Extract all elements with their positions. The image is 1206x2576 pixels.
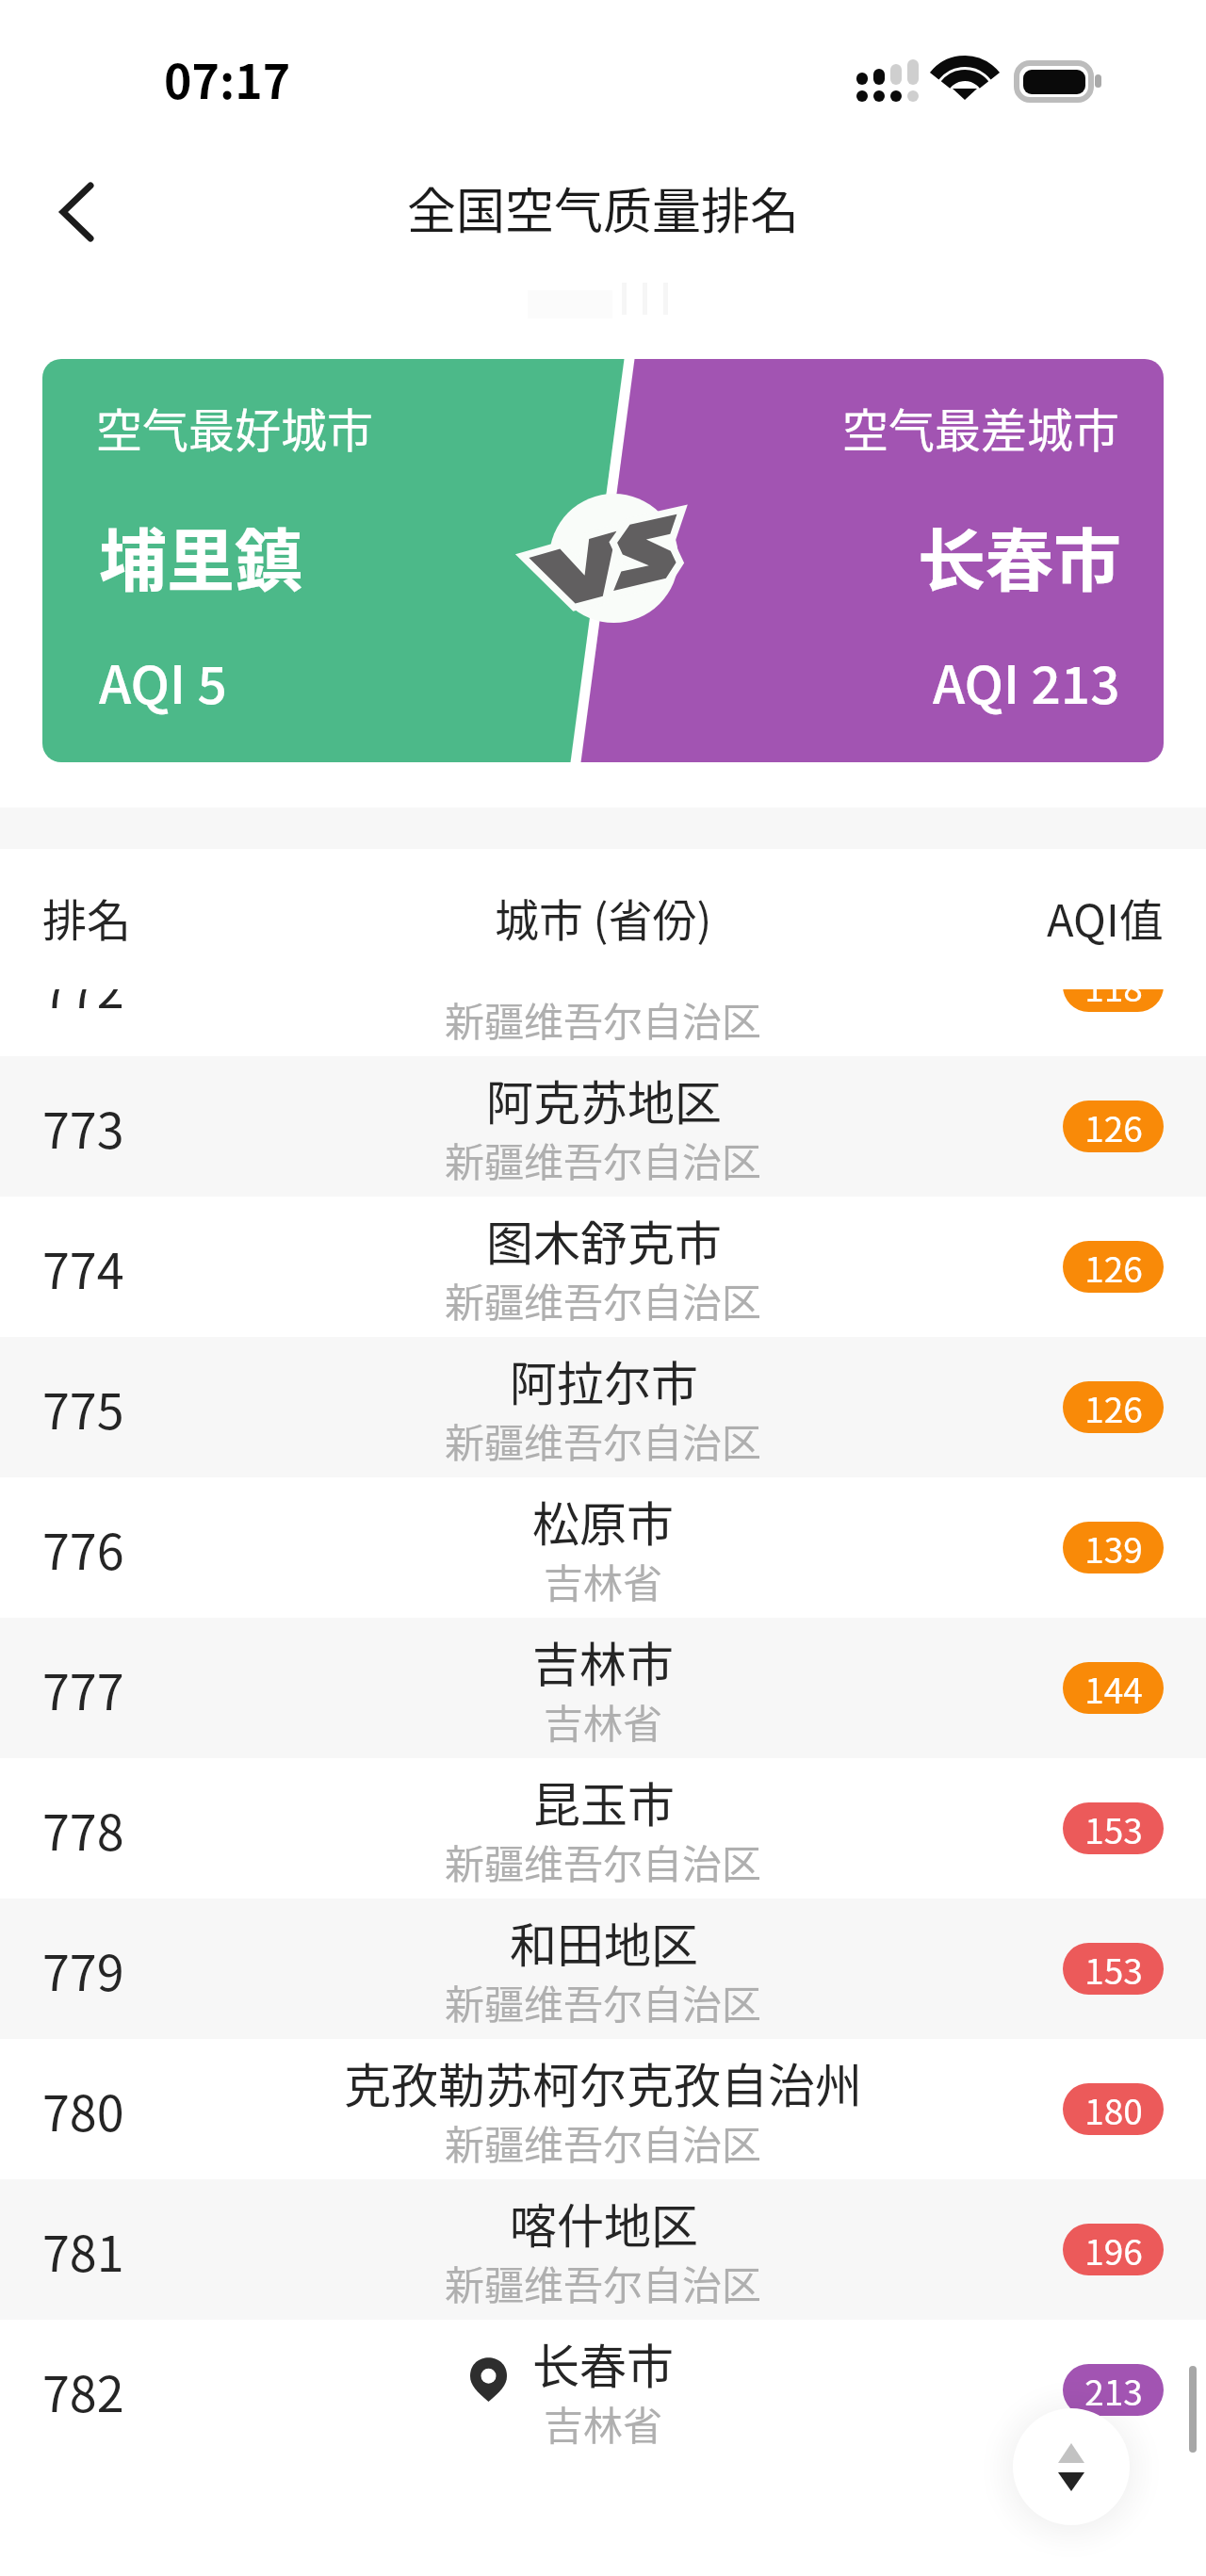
staticText: 长春市 xyxy=(532,2329,674,2397)
button[interactable]: Back xyxy=(25,174,101,250)
staticText: 126 xyxy=(1084,1101,1143,1152)
button[interactable]: 774 xyxy=(0,1197,1206,1337)
staticText: AQI值 xyxy=(1047,885,1164,949)
staticText: 126 xyxy=(1084,1382,1143,1433)
staticText: 长春市 xyxy=(918,506,1122,604)
button[interactable]: 776 xyxy=(0,1477,1206,1618)
staticText: 774 xyxy=(42,1232,124,1303)
staticText: 153 xyxy=(1084,1944,1143,1995)
staticText: 新疆维吾尔自治区 xyxy=(445,1973,762,2030)
staticText: 昆玉市 xyxy=(533,1768,675,1835)
staticText: 新疆维吾尔自治区 xyxy=(445,1833,762,1890)
staticText: 吉林省 xyxy=(544,2394,663,2452)
staticText: 空气最好城市 xyxy=(96,394,374,461)
button[interactable]: 773 xyxy=(0,1056,1206,1197)
staticText: 126 xyxy=(1084,1242,1143,1293)
button[interactable]: 777 xyxy=(0,1618,1206,1758)
staticText: 新疆维吾尔自治区 xyxy=(445,1131,762,1188)
staticText: 775 xyxy=(42,1373,124,1443)
button[interactable]: 781 xyxy=(0,2179,1206,2320)
button[interactable]: 775 xyxy=(0,1337,1206,1477)
staticText: 排名 xyxy=(42,885,131,949)
button[interactable]: Scroll to top or bottom xyxy=(1013,2408,1130,2525)
staticText: 139 xyxy=(1084,1523,1143,1573)
staticText: 新疆维吾尔自治区 xyxy=(445,1271,762,1329)
staticText: 新疆维吾尔自治区 xyxy=(445,1411,762,1469)
staticText: 772 xyxy=(42,952,124,1022)
staticText: 博尔塔拉蒙古自治州 xyxy=(391,925,815,993)
staticText: 780 xyxy=(42,2075,124,2145)
staticText: 778 xyxy=(42,1794,124,1865)
button[interactable]: 782 xyxy=(0,2320,1206,2460)
staticText: 新疆维吾尔自治区 xyxy=(445,2113,762,2171)
staticText: 782 xyxy=(42,2356,124,2426)
staticText: 阿拉尔市 xyxy=(510,1346,698,1414)
button[interactable]: 780 xyxy=(0,2039,1206,2179)
staticText: 07:17 xyxy=(164,44,291,112)
button[interactable]: 779 xyxy=(0,1899,1206,2039)
staticText: 城市 (省份) xyxy=(495,885,712,949)
staticText: 776 xyxy=(42,1513,124,1584)
staticText: 180 xyxy=(1084,2084,1143,2135)
staticText: 153 xyxy=(1084,1803,1143,1854)
staticText: 喀什地区 xyxy=(510,2189,698,2257)
staticText: 144 xyxy=(1084,1663,1143,1714)
staticText: 新疆维吾尔自治区 xyxy=(445,2254,762,2311)
staticText: AQI 5 xyxy=(99,644,227,719)
staticText: 图木舒克市 xyxy=(486,1206,722,1274)
staticText: 和田地区 xyxy=(510,1908,698,1976)
staticText: 新疆维吾尔自治区 xyxy=(445,990,762,1048)
button[interactable]: 空气最好城市 xyxy=(42,359,1164,762)
staticText: 全国空气质量排名 xyxy=(407,172,800,243)
staticText: 773 xyxy=(42,1092,124,1163)
staticText: AQI 213 xyxy=(933,644,1120,719)
staticText: 779 xyxy=(42,1934,124,2005)
staticText: 777 xyxy=(42,1654,124,1724)
button[interactable]: 778 xyxy=(0,1758,1206,1899)
staticText: 213 xyxy=(1084,2365,1143,2416)
staticText: 781 xyxy=(42,2215,124,2286)
staticText: 埔里鎮 xyxy=(99,506,303,604)
staticText: 118 xyxy=(1084,961,1143,1012)
button[interactable]: 772 xyxy=(0,916,1206,1056)
staticText: 196 xyxy=(1084,2225,1143,2275)
staticText: 吉林省 xyxy=(544,1552,663,1609)
staticText: 阿克苏地区 xyxy=(486,1066,722,1133)
staticText: 吉林省 xyxy=(544,1692,663,1750)
staticText: 吉林市 xyxy=(532,1627,674,1695)
staticText: 松原市 xyxy=(532,1487,674,1555)
staticText: 空气最差城市 xyxy=(842,394,1120,461)
staticText: 克孜勒苏柯尔克孜自治州 xyxy=(344,2048,862,2116)
